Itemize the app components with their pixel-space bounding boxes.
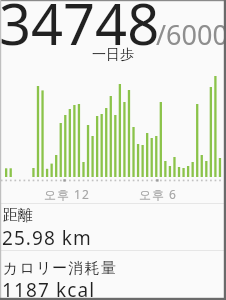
staticText: 距離: [3, 206, 33, 225]
staticText: 34748: [0, 0, 160, 61]
staticText: 25.98 km: [2, 225, 92, 251]
staticText: 1187 kcal: [2, 277, 96, 300]
staticText: 一日歩: [0, 46, 226, 64]
staticText: カロリー消耗量: [3, 259, 117, 278]
staticText: 오후 6: [139, 186, 177, 202]
staticText: /6000: [156, 16, 226, 53]
staticText: 오후 12: [44, 186, 90, 202]
